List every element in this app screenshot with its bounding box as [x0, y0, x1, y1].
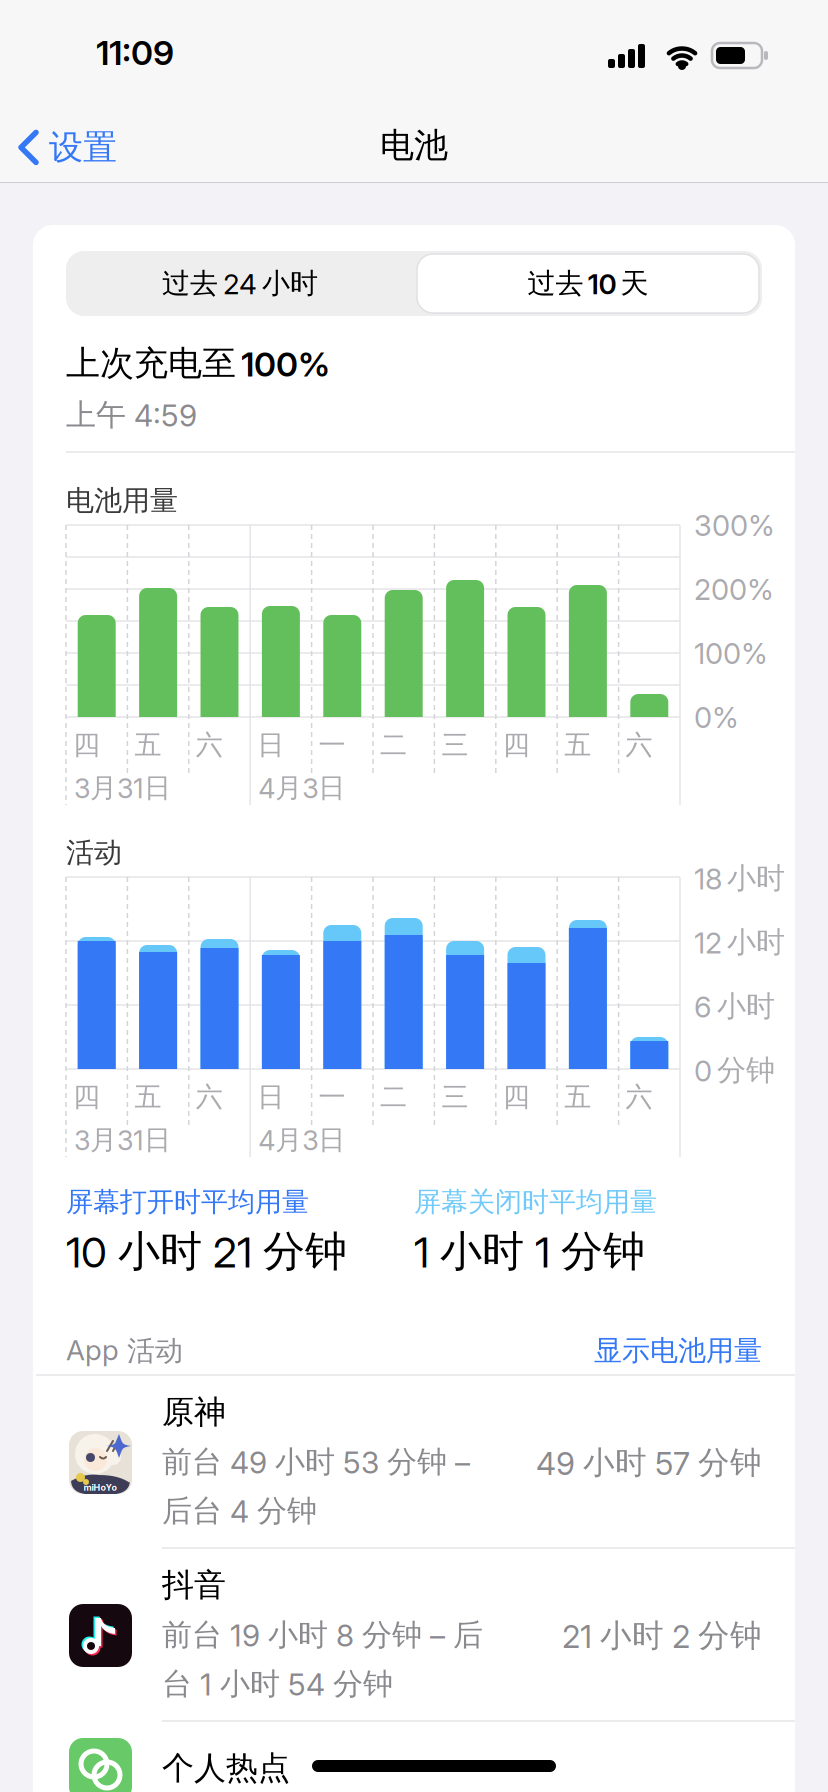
staticText: 五 — [134, 1080, 161, 1114]
staticText: 过去 24 小时 — [162, 266, 318, 301]
staticText: 屏幕关闭时平均用量 — [414, 1185, 657, 1219]
staticText: 3月31日 — [74, 771, 171, 805]
staticText: 四 — [73, 1080, 100, 1114]
staticText: 屏幕打开时平均用量 — [66, 1185, 309, 1219]
staticText: 一 — [319, 1080, 346, 1114]
staticText: 前台 49 小时 53 分钟 – — [162, 1443, 470, 1481]
staticText: 原神 — [162, 1392, 226, 1432]
staticText: 4月3日 — [258, 1123, 345, 1157]
staticText: 显示电池用量 — [594, 1333, 762, 1368]
button[interactable]: 个人热点 — [33, 1721, 795, 1792]
staticText: 1 小时 1 分钟 — [414, 1225, 645, 1278]
staticText: 日 — [257, 1080, 284, 1114]
staticText: 六 — [196, 1080, 223, 1114]
staticText: 后台 4 分钟 — [162, 1492, 317, 1530]
staticText: 18 小时 — [694, 860, 785, 896]
staticText: 四 — [503, 728, 530, 762]
staticText: 抖音 — [162, 1565, 226, 1605]
staticText: 6 小时 — [694, 988, 775, 1024]
staticText: 五 — [564, 728, 591, 762]
staticText: 台 1 小时 54 分钟 — [162, 1665, 393, 1703]
staticText: 电池用量 — [66, 483, 178, 518]
staticText: 六 — [196, 728, 223, 762]
staticText: 12 小时 — [694, 924, 785, 960]
staticText: 200% — [694, 572, 774, 607]
staticText: 六 — [626, 728, 653, 762]
staticText: 3月31日 — [74, 1123, 171, 1157]
staticText: 上次充电至 100% — [66, 342, 330, 385]
staticText: 五 — [134, 728, 161, 762]
staticText: 上午 4:59 — [66, 396, 197, 434]
staticText: 21 小时 2 分钟 — [562, 1616, 762, 1656]
staticText: 三 — [441, 728, 468, 762]
staticText: 0 分钟 — [694, 1052, 775, 1088]
staticText: 二 — [380, 728, 407, 762]
staticText: 设置 — [49, 126, 117, 169]
staticText: 过去 10 天 — [527, 266, 648, 301]
staticText: 五 — [564, 1080, 591, 1114]
staticText: 个人热点 — [162, 1748, 290, 1788]
button[interactable]: 返回设置 — [17, 126, 117, 169]
button[interactable]: 抖音 — [33, 1548, 795, 1721]
staticText: App 活动 — [66, 1333, 183, 1368]
staticText: 电池 — [380, 124, 448, 167]
button[interactable]: miHoYo — [33, 1375, 795, 1548]
staticText: 六 — [626, 1080, 653, 1114]
staticText: 4月3日 — [258, 771, 345, 805]
staticText: 四 — [73, 728, 100, 762]
staticText: 300% — [694, 508, 775, 543]
staticText: 10 小时 21 分钟 — [66, 1225, 347, 1278]
staticText: 日 — [257, 728, 284, 762]
staticText: 前台 19 小时 8 分钟 – 后 — [162, 1616, 483, 1654]
staticText: 四 — [503, 1080, 530, 1114]
staticText: 二 — [380, 1080, 407, 1114]
button[interactable]: 过去 24 小时 — [66, 251, 414, 316]
staticText: miHoYo — [83, 1482, 117, 1493]
staticText: 一 — [319, 728, 346, 762]
staticText: 100% — [694, 636, 768, 671]
staticText: 三 — [441, 1080, 468, 1114]
staticText: 活动 — [66, 835, 122, 870]
button[interactable]: 过去 10 天 — [417, 254, 759, 313]
staticText: 11:09 — [96, 32, 174, 73]
button[interactable]: 显示电池用量 — [462, 1333, 762, 1368]
staticText: 49 小时 57 分钟 — [536, 1443, 762, 1483]
staticText: 0% — [694, 700, 739, 735]
